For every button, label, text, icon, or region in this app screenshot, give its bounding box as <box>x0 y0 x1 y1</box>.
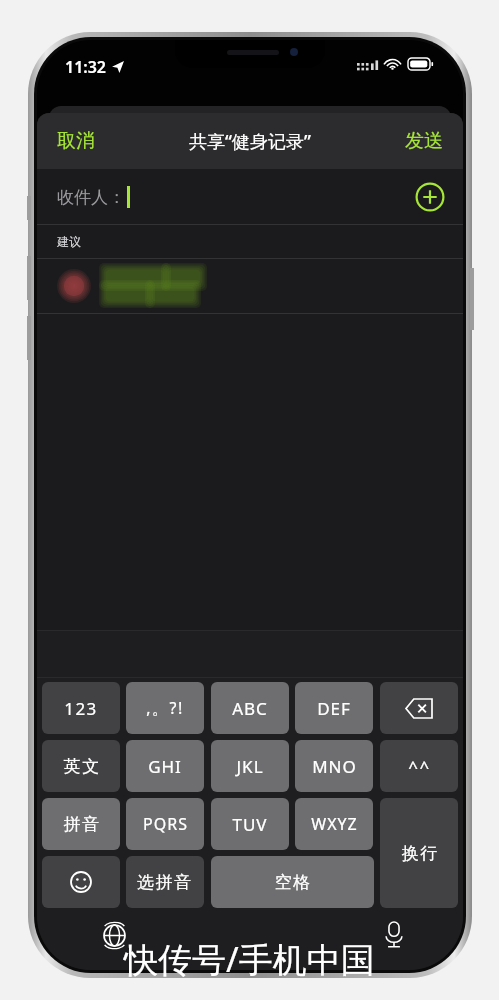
button[interactable]: 英文 <box>42 740 120 792</box>
staticText: 共享“健身记录” <box>189 129 311 154</box>
button[interactable]: 拼音 <box>42 798 120 850</box>
button[interactable]: 123 <box>42 682 120 734</box>
staticText: PQRS <box>143 813 188 835</box>
button[interactable]: 空格 <box>211 856 374 908</box>
button[interactable]: Voice input <box>377 918 411 952</box>
staticText: JKL <box>236 755 264 778</box>
staticText: ^^ <box>408 755 431 778</box>
staticText: TUV <box>232 813 268 836</box>
staticText: 选拼音 <box>137 872 193 893</box>
staticText: 拼音 <box>63 814 100 835</box>
button[interactable]: Switch keyboard <box>97 918 131 952</box>
button[interactable]: ^^ <box>380 740 458 792</box>
button[interactable]: Add recipient <box>415 182 445 212</box>
staticText: 发送 <box>405 129 443 153</box>
staticText: 快传号/手机中国 <box>124 936 375 982</box>
staticText: MNO <box>312 755 357 778</box>
staticText: WXYZ <box>311 813 358 835</box>
button[interactable]: 取消 <box>37 113 115 169</box>
staticText: 建议 <box>57 234 81 249</box>
button[interactable]: DEF <box>295 682 373 734</box>
staticText: 11:32 <box>65 56 107 78</box>
button[interactable]: Delete <box>380 682 458 734</box>
button[interactable]: ABC <box>211 682 289 734</box>
button[interactable]: GHI <box>126 740 204 792</box>
staticText: 123 <box>64 697 98 720</box>
staticText: 空格 <box>274 872 311 893</box>
button[interactable]: ,。?! <box>126 682 204 734</box>
staticText: 收件人： <box>57 187 125 208</box>
button[interactable]: 收件人： <box>37 169 463 224</box>
button[interactable]: 发送 <box>385 113 463 169</box>
button[interactable]: WXYZ <box>295 798 373 850</box>
staticText: 换行 <box>401 843 438 864</box>
staticText: ,。?! <box>146 697 184 719</box>
staticText: GHI <box>148 755 182 778</box>
button[interactable]: Emoji <box>42 856 120 908</box>
button[interactable]: MNO <box>295 740 373 792</box>
staticText: 英文 <box>63 756 100 777</box>
button[interactable]: TUV <box>211 798 289 850</box>
staticText: DEF <box>317 697 351 720</box>
staticText: ABC <box>232 697 268 720</box>
button[interactable]: 选拼音 <box>126 856 204 908</box>
button[interactable]: PQRS <box>126 798 204 850</box>
staticText: 取消 <box>57 129 95 153</box>
button[interactable]: 换行 <box>380 798 458 908</box>
button[interactable]: JKL <box>211 740 289 792</box>
button[interactable] <box>37 259 463 313</box>
